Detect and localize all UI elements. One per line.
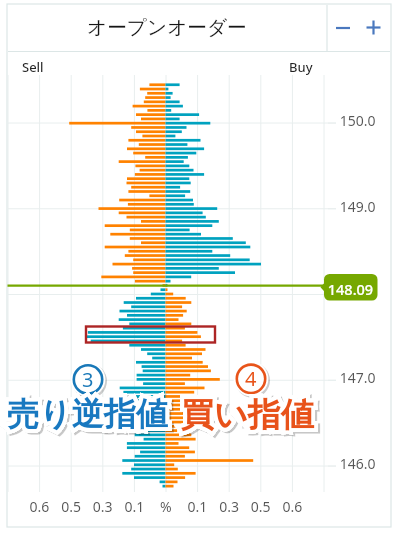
button[interactable] [8, 5, 327, 51]
button[interactable]: Zoom out [330, 8, 356, 48]
button[interactable]: Zoom in [360, 8, 386, 48]
